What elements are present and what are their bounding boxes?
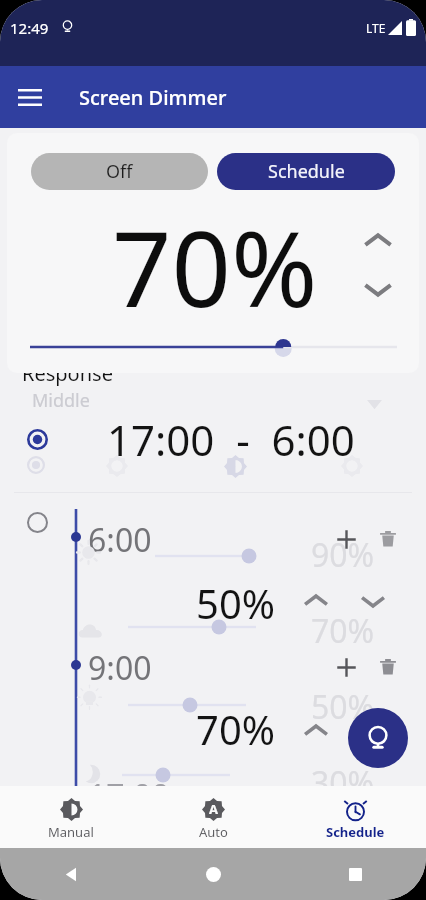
staticText: Auto xyxy=(199,823,228,841)
button[interactable]: Increase level xyxy=(301,586,331,616)
button[interactable]: A xyxy=(142,786,284,848)
button[interactable]: Home xyxy=(142,848,284,900)
staticText: 17:00 xyxy=(88,774,170,818)
staticText: LTE xyxy=(366,20,386,36)
button[interactable]: Back xyxy=(0,848,142,900)
button[interactable]: Increase brightness xyxy=(356,219,400,263)
staticText: 70% xyxy=(112,196,318,338)
staticText: 50% xyxy=(196,576,275,630)
button[interactable]: Toggle dimmer xyxy=(348,708,408,768)
button[interactable]: Delete schedule step xyxy=(374,525,402,553)
staticText: Manual xyxy=(48,823,94,841)
button[interactable]: Add schedule step 2 xyxy=(332,653,360,681)
staticText: 17:00 - 6:00 xyxy=(107,411,355,468)
staticText: 90% xyxy=(311,533,375,577)
button[interactable]: Schedule xyxy=(284,786,426,848)
staticText: Response xyxy=(22,360,113,387)
button[interactable]: Manual xyxy=(0,786,142,848)
staticText: 70% xyxy=(196,702,275,756)
button[interactable]: Increase level 2 xyxy=(301,716,331,746)
button[interactable]: Decrease level xyxy=(358,586,388,616)
button[interactable] xyxy=(7,331,419,363)
button[interactable]: Delete schedule step 2 xyxy=(374,653,402,681)
button[interactable]: Decrease brightness xyxy=(356,267,400,311)
button[interactable]: Add schedule step xyxy=(332,525,360,553)
staticText: Middle xyxy=(32,388,90,413)
staticText: 30% xyxy=(311,761,375,805)
staticText: Schedule xyxy=(326,823,385,841)
button[interactable]: Schedule xyxy=(217,153,395,190)
button[interactable]: Open navigation menu xyxy=(12,79,48,115)
button[interactable]: Recent apps xyxy=(284,848,426,900)
staticText: 50% xyxy=(311,685,375,729)
staticText: Schedule xyxy=(268,159,345,184)
staticText: 12:49 xyxy=(10,18,49,38)
staticText: A xyxy=(209,800,218,818)
button[interactable]: Off xyxy=(31,153,208,190)
staticText: 70% xyxy=(311,609,375,653)
staticText: Screen Dimmer xyxy=(79,84,227,111)
staticText: 9:00 xyxy=(88,646,152,690)
staticText: 6:00 xyxy=(88,518,152,562)
staticText: Off xyxy=(106,159,133,184)
